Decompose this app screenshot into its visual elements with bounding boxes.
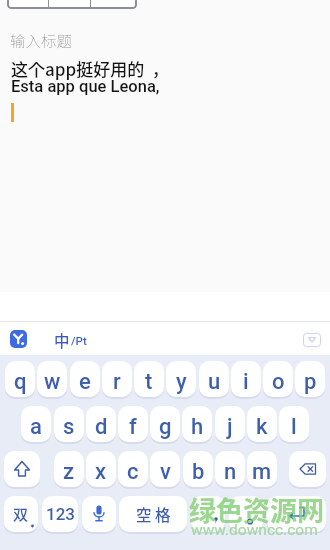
button[interactable]: e (70, 361, 100, 397)
staticText: m (252, 459, 272, 485)
button[interactable]: b (183, 451, 213, 487)
button[interactable]: 123 (42, 496, 78, 532)
button[interactable]: x (86, 451, 116, 487)
staticText: 绿色资源网 (189, 490, 324, 529)
staticText: b (192, 459, 205, 485)
staticText: 123 (46, 504, 75, 524)
button[interactable] (7, 0, 137, 9)
staticText: e (79, 369, 91, 395)
button[interactable] (267, 496, 326, 532)
staticText: q (14, 369, 27, 395)
staticText: s (63, 414, 75, 440)
button[interactable]: a (21, 406, 51, 442)
staticText: f (129, 414, 137, 440)
button[interactable]: g (150, 406, 180, 442)
button[interactable]: n (215, 451, 245, 487)
staticText: v (160, 459, 171, 485)
button[interactable]: o (263, 361, 293, 397)
button[interactable]: k (247, 406, 277, 442)
staticText: a (30, 414, 42, 440)
button[interactable]: m (247, 451, 277, 487)
staticText: k (256, 414, 268, 440)
staticText: w (44, 369, 61, 395)
button[interactable]: p (295, 361, 325, 397)
button[interactable]: h (182, 406, 212, 442)
staticText: i (243, 369, 249, 395)
staticText: d (95, 414, 108, 440)
staticText: 输入标题 (10, 29, 73, 51)
button[interactable]: c (118, 451, 148, 487)
staticText: r (113, 369, 121, 395)
staticText: 空 格 (136, 503, 171, 525)
staticText: h (191, 414, 204, 440)
staticText: p (304, 369, 317, 395)
button[interactable] (229, 496, 263, 532)
button[interactable]: l (279, 406, 309, 442)
button[interactable] (191, 496, 225, 532)
button[interactable]: u (199, 361, 229, 397)
staticText: o (272, 369, 285, 395)
staticText: x (95, 459, 107, 485)
button[interactable] (4, 451, 40, 487)
button[interactable]: d (86, 406, 116, 442)
button[interactable] (303, 333, 321, 347)
staticText: g (159, 414, 172, 440)
button[interactable]: f (118, 406, 148, 442)
staticText: j (227, 414, 233, 440)
staticText: u (208, 369, 221, 395)
staticText: n (224, 459, 237, 485)
button[interactable]: z (54, 451, 84, 487)
button[interactable]: q (5, 361, 35, 397)
staticText: l (291, 414, 297, 440)
staticText: 双 (13, 503, 29, 525)
staticText: 中 (54, 329, 70, 351)
button[interactable]: w (37, 361, 67, 397)
button[interactable] (10, 330, 27, 348)
staticText: t (145, 369, 153, 395)
button[interactable]: j (215, 406, 245, 442)
button[interactable]: s (54, 406, 84, 442)
button[interactable]: 空 格 (119, 496, 187, 532)
button[interactable] (289, 451, 326, 487)
button[interactable]: r (102, 361, 132, 397)
staticText: c (127, 459, 139, 485)
staticText: www.downcc.com (191, 521, 318, 539)
staticText: Esta app que Leona, (11, 77, 160, 96)
button[interactable]: i (231, 361, 261, 397)
button[interactable]: t (134, 361, 164, 397)
staticText: z (63, 459, 75, 485)
staticText: y (176, 369, 187, 395)
staticText: 这个app挺好用的 ， (11, 56, 169, 81)
button[interactable]: y (166, 361, 196, 397)
button[interactable]: v (150, 451, 180, 487)
staticText: /Pt (71, 334, 87, 347)
button[interactable]: 双 (4, 496, 38, 532)
button[interactable] (82, 496, 116, 532)
